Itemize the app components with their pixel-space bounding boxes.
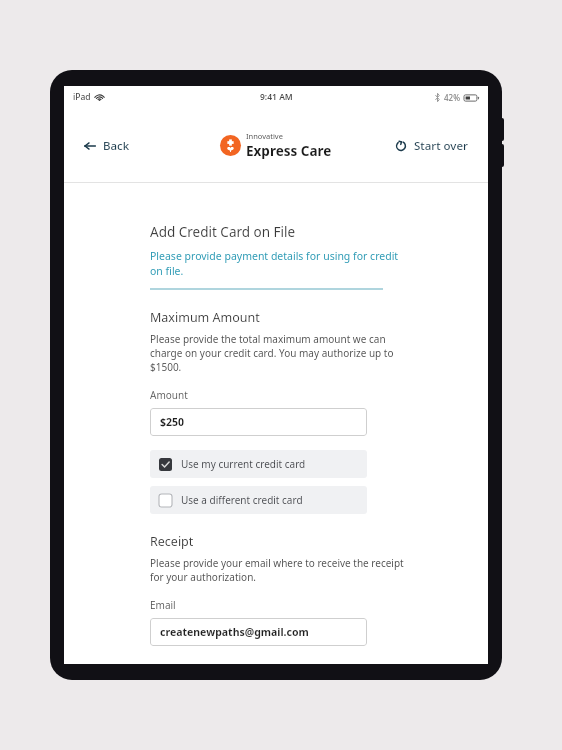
- staticText: Please provide the total maximum amount …: [150, 332, 394, 374]
- staticText: Receipt: [150, 533, 194, 550]
- staticText: 42%: [444, 92, 460, 103]
- staticText: iPad: [73, 91, 91, 103]
- staticText: Please provide your email where to recei…: [150, 556, 404, 584]
- button[interactable]: $250: [150, 408, 367, 436]
- button[interactable]: Back: [78, 132, 136, 160]
- staticText: 9:41 AM: [260, 91, 293, 103]
- button[interactable]: Use a different credit card: [150, 486, 367, 514]
- staticText: $250: [160, 415, 185, 429]
- staticText: Express Care: [246, 142, 332, 160]
- staticText: Email: [150, 598, 176, 612]
- staticText: Innovative: [246, 131, 283, 141]
- button[interactable]: Start over: [389, 132, 474, 160]
- staticText: Use my current credit card: [181, 457, 306, 471]
- staticText: Add Credit Card on File: [150, 223, 296, 241]
- staticText: Back: [103, 138, 130, 154]
- button[interactable]: Use my current credit card: [150, 450, 367, 478]
- staticText: Maximum Amount: [150, 309, 260, 326]
- staticText: Please provide payment details for using…: [150, 249, 399, 278]
- staticText: createnewpaths@gmail.com: [160, 625, 309, 639]
- staticText: Use a different credit card: [181, 493, 303, 507]
- staticText: Start over: [414, 138, 468, 154]
- staticText: Amount: [150, 388, 188, 402]
- button[interactable]: createnewpaths@gmail.com: [150, 618, 367, 646]
